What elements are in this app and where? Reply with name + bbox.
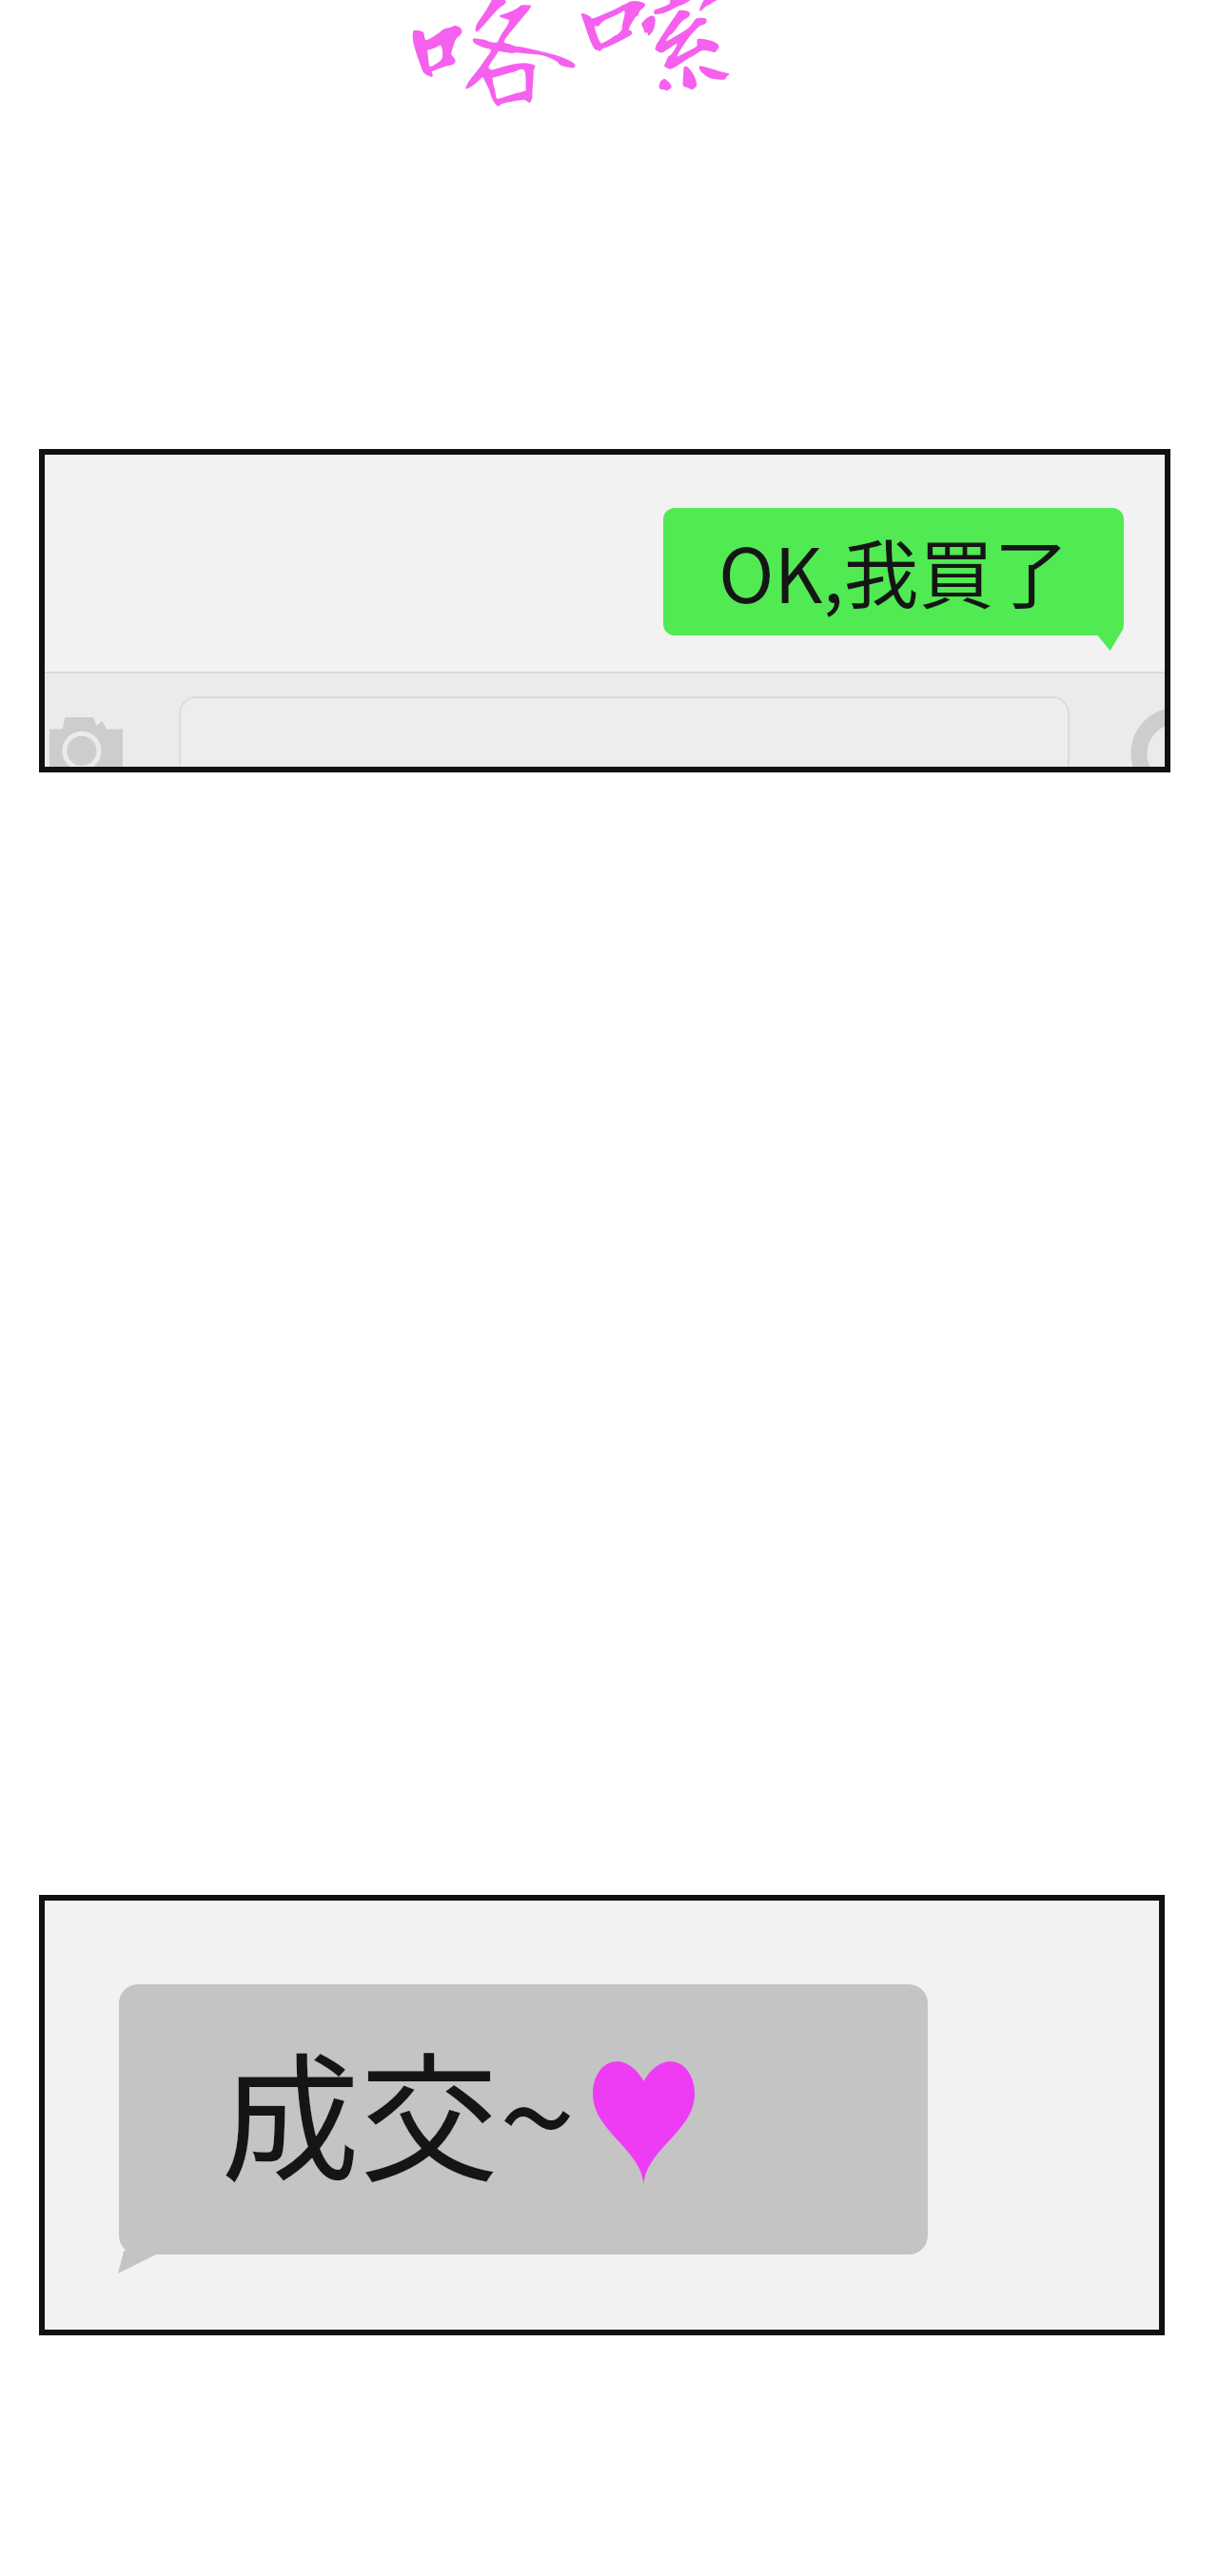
button[interactable]: 咯 — [404, 0, 583, 127]
staticText: 咯 — [404, 0, 583, 127]
button[interactable]: OK,我買了 — [663, 508, 1124, 635]
staticText: 嗦 — [560, 0, 750, 114]
button[interactable]: 成交~ — [45, 1901, 1159, 2330]
staticText: OK,我買了 — [718, 516, 1070, 624]
button[interactable]: OK,我買了 — [45, 455, 1165, 767]
button[interactable]: Voice message — [1118, 710, 1165, 767]
button[interactable]: Camera — [49, 717, 123, 767]
staticText: 成交~ — [221, 2009, 577, 2210]
button[interactable]: 成交~ — [119, 1984, 928, 2254]
button[interactable]: 嗦 — [560, 0, 750, 114]
